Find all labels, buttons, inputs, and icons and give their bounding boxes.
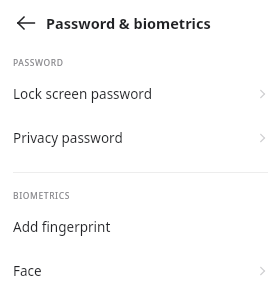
staticText: PASSWORD bbox=[13, 57, 64, 69]
button[interactable]: Back bbox=[12, 9, 40, 37]
staticText: Password & biometrics bbox=[46, 13, 211, 33]
staticText: Face bbox=[13, 262, 42, 280]
button[interactable]: Privacy password bbox=[0, 116, 280, 160]
button[interactable]: Face bbox=[0, 249, 280, 293]
staticText: Privacy password bbox=[13, 129, 123, 147]
button[interactable]: Lock screen password bbox=[0, 72, 280, 116]
staticText: BIOMETRICS bbox=[13, 190, 71, 202]
staticText: Lock screen password bbox=[13, 85, 152, 103]
button[interactable]: Add fingerprint bbox=[0, 205, 280, 249]
staticText: Add fingerprint bbox=[13, 218, 111, 236]
